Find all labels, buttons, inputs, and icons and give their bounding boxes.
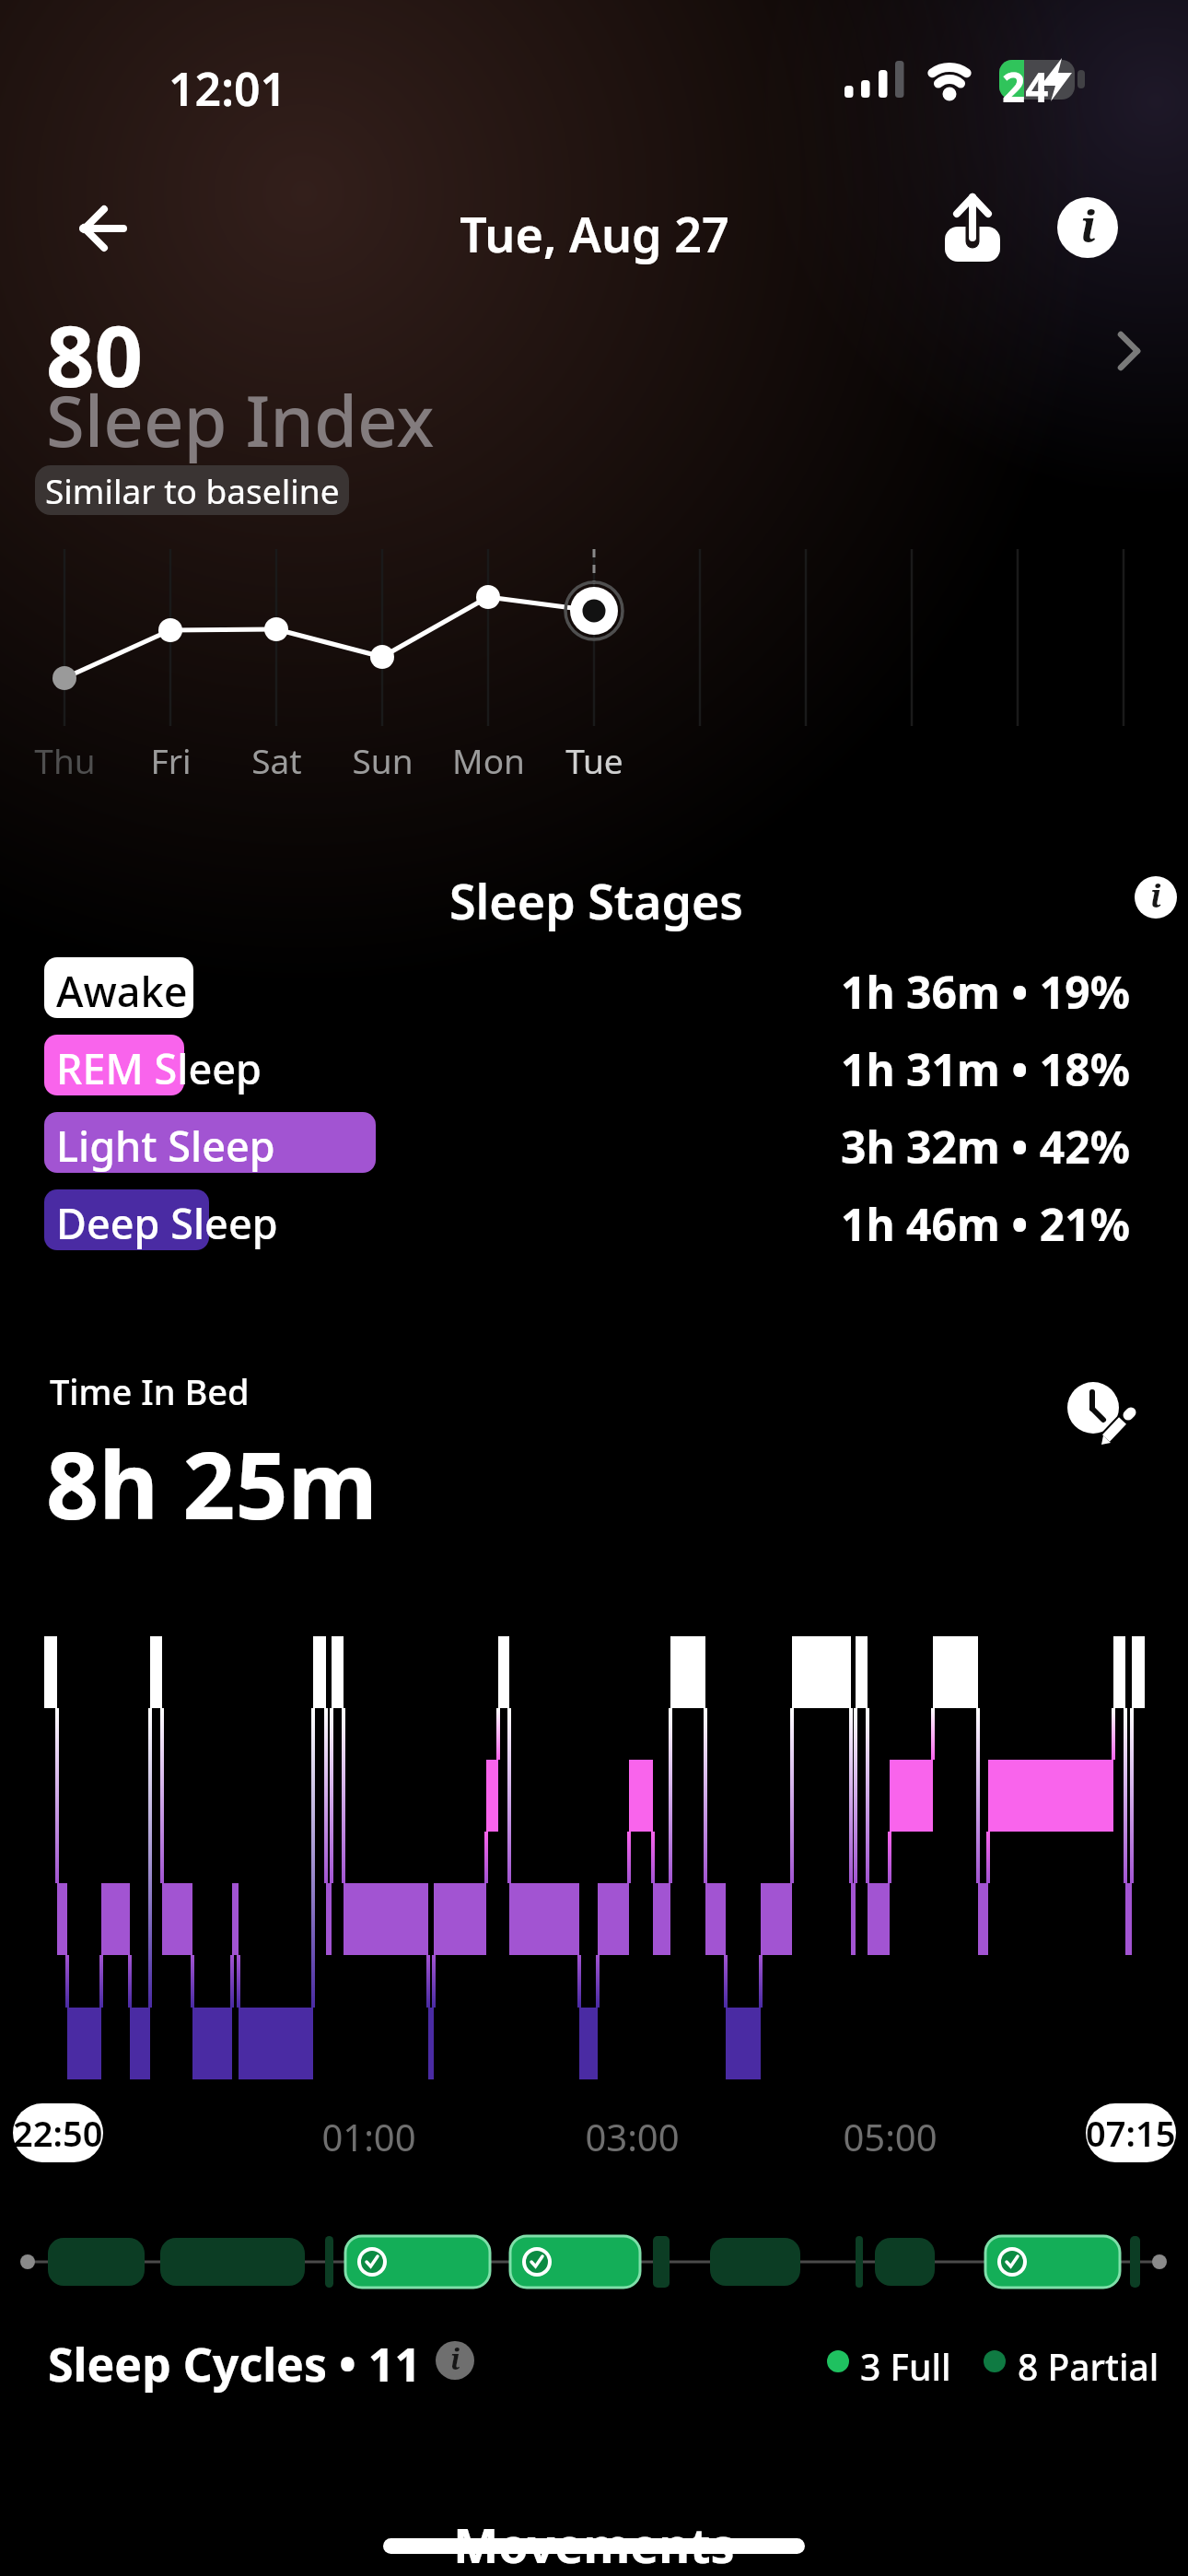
staticText: 24 [1002,59,1049,114]
staticText: 1h 46m • 21% [840,1194,1130,1254]
button[interactable] [64,203,138,258]
staticText: Light Sleep [56,1118,275,1174]
staticText: Time In Bed [50,1367,250,1415]
staticText: 03:00 [585,2112,680,2161]
button[interactable] [936,190,1009,265]
staticText: 07:15 [1086,2109,1176,2157]
button[interactable] [44,957,193,1018]
staticText: 3h 32m • 42% [840,1117,1130,1177]
button[interactable] [383,2538,805,2554]
staticText: 22:50 [13,2109,103,2157]
staticText: Sun [352,737,413,783]
staticText: Tue [565,737,623,783]
staticText: Movements [453,2512,735,2576]
staticText: i [1080,195,1096,255]
staticText: Sleep Stages [449,868,743,933]
staticText: 1h 31m • 18% [840,1039,1130,1099]
staticText: 12:01 [169,57,287,120]
button[interactable] [1059,1375,1142,1458]
button[interactable]: i [436,2341,474,2380]
staticText: 05:00 [843,2112,938,2161]
staticText: 80 [46,297,144,412]
staticText: 8 Partial [1018,2342,1159,2391]
staticText: i [450,2340,460,2378]
button[interactable]: Similar to baseline [35,465,349,515]
staticText: Sleep Cycles • 11 [48,2333,422,2395]
staticText: Mon [452,737,525,783]
staticText: i [1150,874,1162,917]
button[interactable]: 22:50 [13,2103,103,2162]
staticText: Similar to baseline [45,467,340,513]
button[interactable]: i [1057,197,1118,258]
staticText: 3 Full [860,2342,951,2391]
staticText: Tue, Aug 27 [460,201,729,266]
button[interactable] [44,1112,376,1173]
staticText: 1h 36m • 19% [840,962,1130,1022]
button[interactable]: 07:15 [1086,2103,1176,2162]
button[interactable]: i [1135,876,1177,919]
staticText: Fri [150,737,192,783]
staticText: Sleep Index [46,372,435,468]
staticText: Thu [34,737,96,783]
staticText: Awake [56,963,188,1019]
staticText: Sat [251,737,302,783]
staticText: 8h 25m [46,1421,379,1546]
staticText: 01:00 [321,2112,416,2161]
button[interactable] [44,1035,184,1095]
staticText: Deep Sleep [56,1195,278,1251]
staticText: REM Sleep [56,1040,262,1096]
button[interactable] [44,1189,209,1250]
